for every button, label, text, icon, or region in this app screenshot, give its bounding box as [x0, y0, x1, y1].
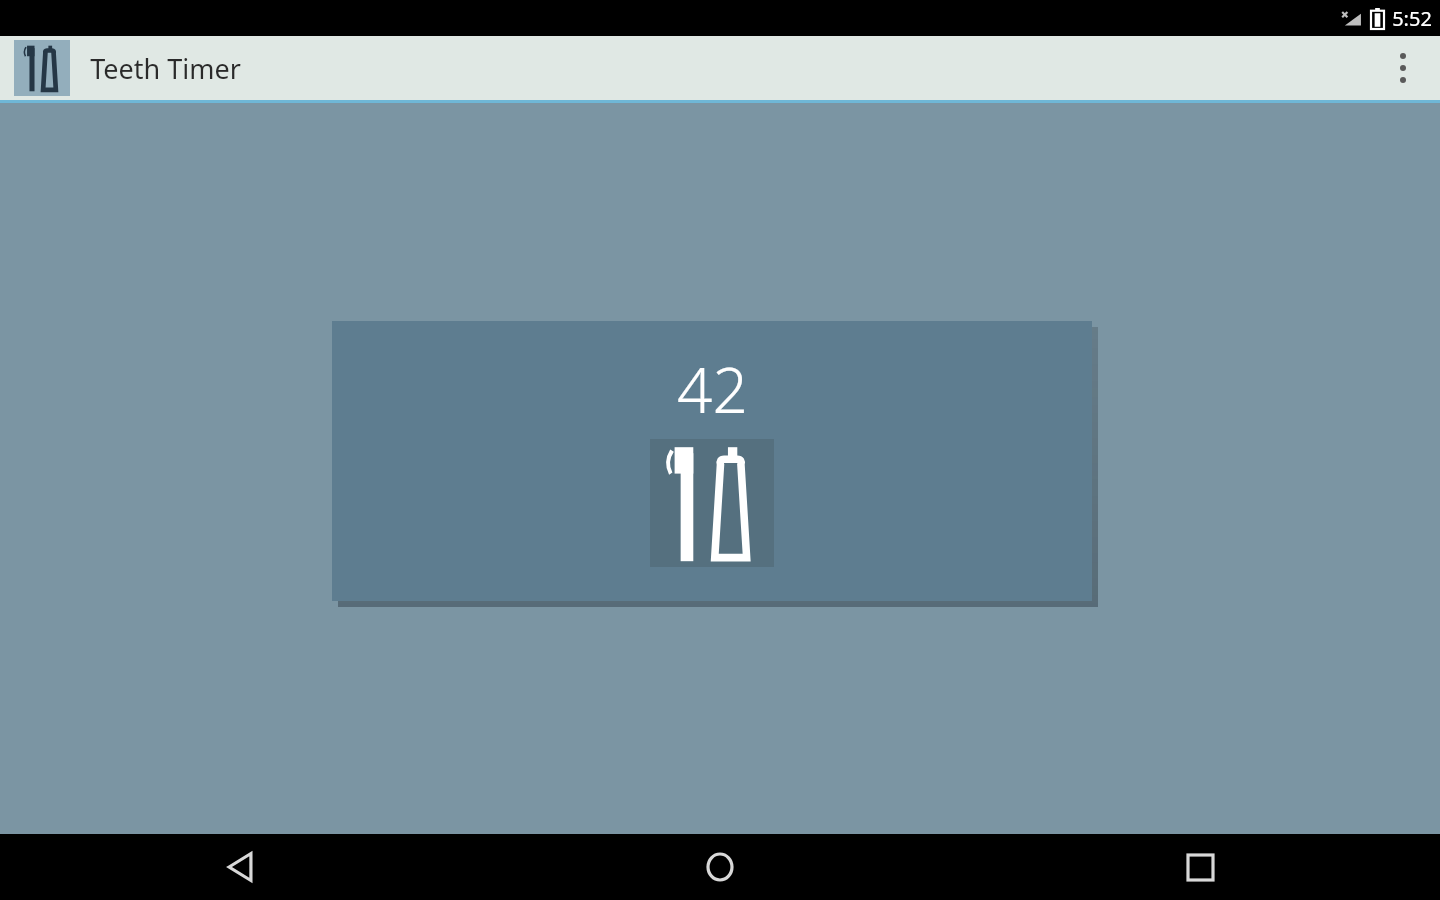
button[interactable]: Back — [180, 834, 300, 900]
staticText: Teeth Timer — [90, 50, 241, 87]
button[interactable]: 42 — [332, 321, 1092, 601]
button[interactable]: Home — [660, 834, 780, 900]
staticText: 42 — [677, 347, 748, 431]
button[interactable]: Recent apps — [1140, 834, 1260, 900]
button[interactable]: More options — [1376, 36, 1430, 100]
staticText: 5:52 — [1392, 5, 1432, 32]
